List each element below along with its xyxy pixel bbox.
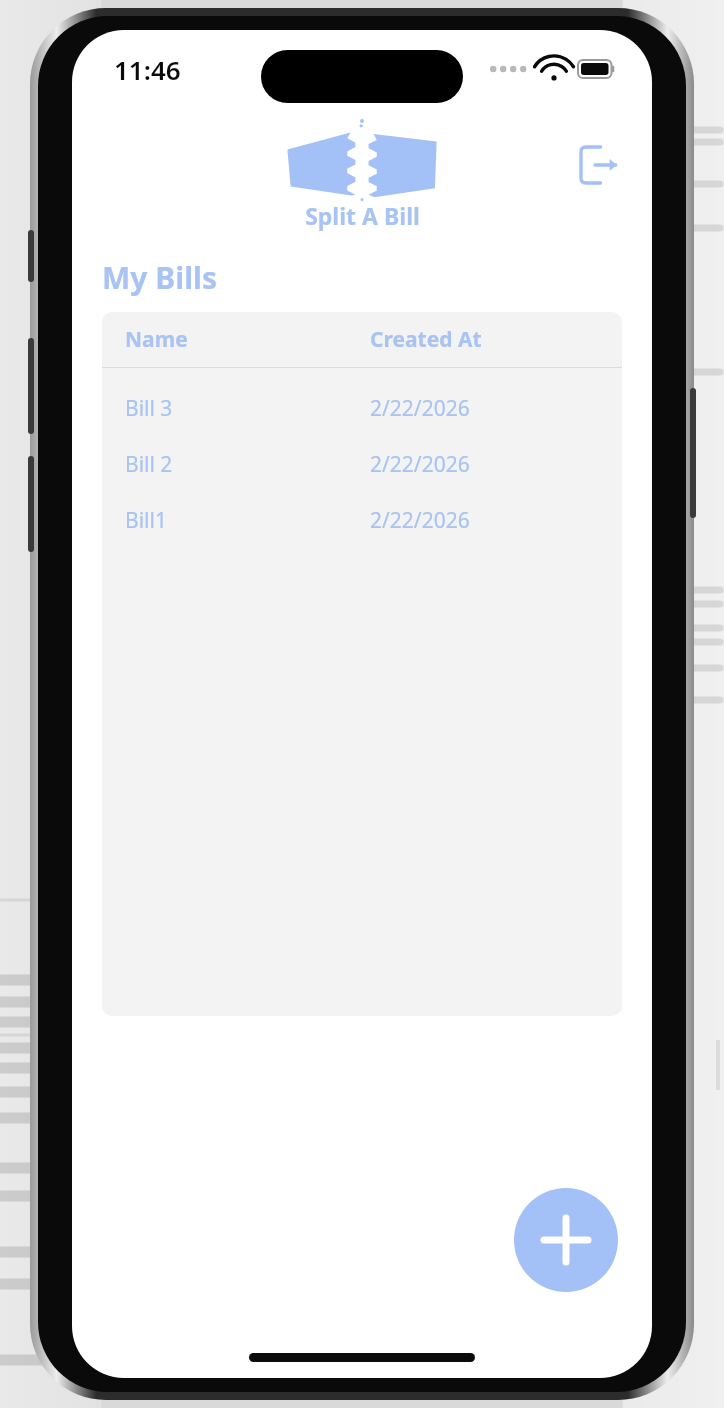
staticText: Bill1 bbox=[125, 506, 370, 535]
button[interactable]: Log out bbox=[572, 138, 626, 192]
staticText: Created At bbox=[370, 325, 482, 354]
staticText: 11:46 bbox=[114, 52, 181, 87]
staticText: Split A Bill bbox=[305, 200, 420, 231]
staticText: 2/22/2026 bbox=[370, 450, 470, 479]
button[interactable]: Add bill bbox=[514, 1188, 618, 1292]
staticText: 2/22/2026 bbox=[370, 394, 470, 423]
staticText: Bill 3 bbox=[125, 394, 370, 423]
staticText: 2/22/2026 bbox=[370, 506, 470, 535]
staticText: Bill 2 bbox=[125, 450, 370, 479]
button[interactable]: Bill 2 bbox=[102, 436, 622, 492]
button[interactable]: Bill 3 bbox=[102, 380, 622, 436]
staticText: Name bbox=[125, 325, 370, 354]
staticText: My Bills bbox=[102, 257, 218, 298]
button[interactable]: Bill1 bbox=[102, 492, 622, 548]
